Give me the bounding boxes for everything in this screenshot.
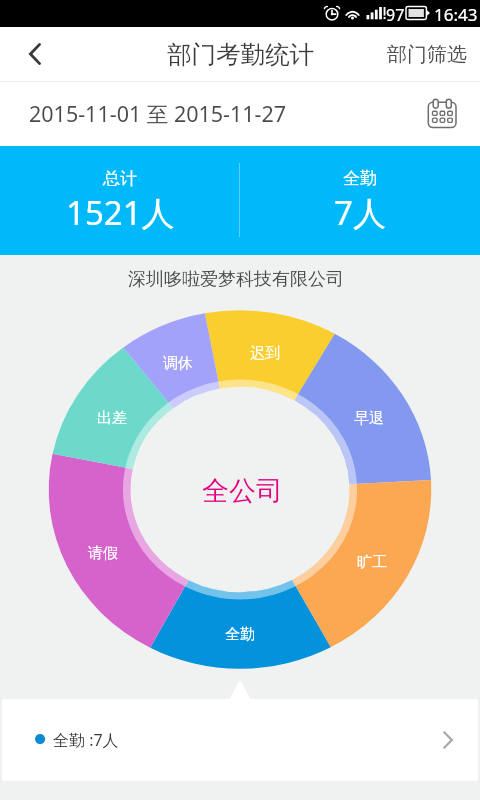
button[interactable]: 出差 <box>90 406 134 430</box>
staticText: 旷工 <box>357 553 387 572</box>
staticText: 全勤 <box>225 625 255 644</box>
button[interactable]: 2015-11-01 至 2015-11-27 <box>0 82 480 146</box>
staticText: 全勤 :7人 <box>53 729 119 751</box>
staticText: 总计 <box>103 168 137 189</box>
staticText: 全勤 <box>343 168 377 189</box>
staticText: 迟到 <box>250 344 280 363</box>
button[interactable]: 查看详情 <box>422 718 466 762</box>
button[interactable]: 返回 <box>0 27 70 82</box>
button[interactable]: 全勤 <box>218 622 262 646</box>
staticText: 深圳哆啦爱梦科技有限公司 <box>128 268 344 291</box>
button[interactable]: 迟到 <box>243 341 287 365</box>
button[interactable]: 全勤 <box>240 146 480 255</box>
staticText: 2015-11-01 至 2015-11-27 <box>29 99 287 128</box>
staticText: 全公司 <box>202 474 283 508</box>
button[interactable]: 总计 <box>0 146 240 255</box>
button[interactable]: 旷工 <box>350 550 394 574</box>
staticText: 97 <box>386 4 405 26</box>
button[interactable]: 全勤 :7人 <box>2 699 478 781</box>
button[interactable]: 部门筛选 <box>373 27 480 82</box>
staticText: 部门筛选 <box>387 42 467 67</box>
staticText: 1521人 <box>66 190 175 235</box>
staticText: 早退 <box>354 409 384 428</box>
button[interactable]: 调休 <box>156 351 200 375</box>
staticText: 部门考勤统计 <box>167 39 314 70</box>
button[interactable]: 早退 <box>347 406 391 430</box>
staticText: 请假 <box>88 544 118 563</box>
staticText: 调休 <box>163 354 193 373</box>
button[interactable]: 请假 <box>81 541 125 565</box>
staticText: 7人 <box>334 190 386 235</box>
staticText: 出差 <box>97 409 127 428</box>
staticText: 16:43 <box>434 3 478 26</box>
